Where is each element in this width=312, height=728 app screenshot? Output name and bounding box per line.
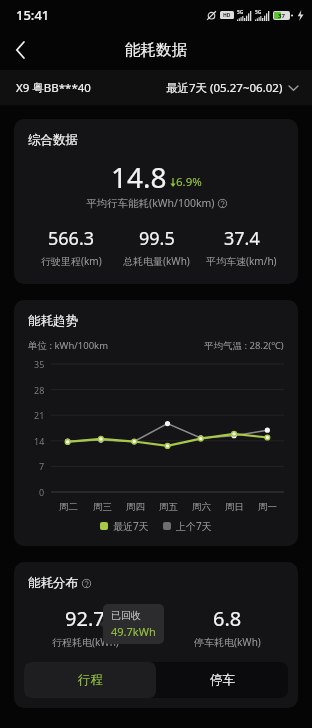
staticText: 最近7天	[113, 519, 149, 533]
staticText: 行程耗电(kWh)	[52, 635, 119, 649]
staticText: 14	[34, 435, 45, 447]
staticText: 单位 : kWh/100km	[28, 339, 109, 352]
staticText: 92.7	[65, 605, 105, 632]
staticText: 566.3	[48, 226, 95, 251]
staticText: 行程	[78, 672, 103, 688]
staticText: 5G	[255, 9, 262, 16]
staticText: 能耗分布	[28, 575, 78, 591]
button[interactable]: 最近7天 (05.27~06.02)	[166, 70, 312, 105]
staticText: 平均行车能耗(kWh/100km)	[86, 196, 215, 210]
staticText: 周三	[93, 501, 112, 513]
staticText: 0	[39, 486, 45, 498]
staticText: 周二	[59, 501, 78, 513]
staticText: 能耗趋势	[28, 313, 78, 329]
staticText: 行驶里程(km)	[41, 254, 102, 268]
staticText: 28	[34, 384, 45, 396]
staticText: HD	[223, 12, 231, 19]
staticText: 周一	[258, 501, 277, 513]
staticText: 7	[39, 460, 45, 472]
staticText: 停车耗电(kWh)	[194, 635, 261, 649]
staticText: 37.4	[224, 226, 260, 251]
staticText: 综合数据	[28, 132, 78, 148]
staticText: 已回收	[111, 609, 141, 622]
staticText: 最近7天 (05.27~06.02)	[166, 80, 283, 96]
staticText: 能耗数据	[125, 40, 187, 60]
button[interactable]: 停车	[156, 662, 288, 698]
staticText: 上个7天	[176, 519, 212, 533]
staticText: 总耗电量(kWh)	[123, 254, 190, 268]
staticText: 14.8	[111, 158, 167, 196]
staticText: 37	[274, 12, 289, 19]
staticText: 5G	[237, 9, 244, 16]
button[interactable]: Back	[0, 30, 40, 70]
staticText: 35	[34, 358, 45, 370]
staticText: 周六	[192, 501, 211, 513]
staticText: 49.7kWh	[111, 624, 156, 639]
staticText: 6.9%	[176, 174, 202, 190]
staticText: 21	[34, 409, 45, 421]
staticText: 停车	[210, 672, 235, 688]
staticText: 周日	[225, 501, 244, 513]
staticText: 周四	[126, 501, 145, 513]
button[interactable]: 行程	[24, 662, 156, 698]
button[interactable]: X9 粤BB***40	[0, 70, 166, 105]
staticText: 15:41	[16, 6, 50, 24]
staticText: 99.5	[139, 226, 175, 251]
staticText: 平均气温 : 28.2(℃)	[204, 339, 284, 352]
staticText: 6.8	[213, 605, 242, 632]
staticText: 平均车速(km/h)	[206, 254, 277, 268]
staticText: 周五	[159, 501, 178, 513]
staticText: X9 粤BB***40	[16, 80, 91, 96]
